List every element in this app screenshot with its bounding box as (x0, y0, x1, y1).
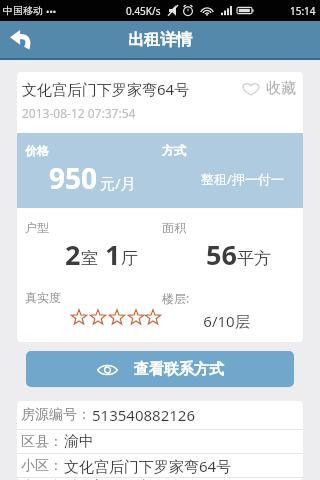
staticText: 楼层: (162, 290, 190, 306)
staticText: 价格 (25, 143, 49, 158)
staticText: 渝中 (64, 432, 94, 451)
staticText: 平方 (237, 248, 271, 269)
button[interactable]: 收藏 (238, 75, 299, 102)
staticText: 56 (206, 236, 237, 273)
staticText: 文化宫后门下罗家弯64号 (64, 456, 232, 476)
staticText: 房源编号： (21, 406, 91, 424)
staticText: 区县： (21, 433, 63, 451)
staticText: ••• (46, 5, 57, 17)
staticText: 文化宫后门下罗家弯64号 (22, 79, 190, 99)
staticText: 小区： (21, 457, 63, 475)
staticText: 房屋类型： (21, 478, 91, 480)
staticText: 方式 (162, 143, 186, 158)
staticText: 面积 (162, 220, 186, 235)
staticText: 出租详情 (128, 30, 192, 50)
staticText: 厅 (121, 248, 138, 269)
staticText: 室 (81, 248, 98, 269)
staticText: 元/月 (100, 173, 136, 193)
staticText: 户型 (25, 220, 49, 235)
button[interactable]: Back (6, 25, 36, 55)
staticText: 6/10层 (162, 311, 291, 331)
staticText: 15:14 (290, 4, 316, 18)
staticText: 整租/押一付一 (182, 170, 303, 188)
staticText: 查看联系方式 (134, 360, 224, 379)
staticText: 普通住宅 (92, 478, 152, 480)
staticText: 2013-08-12 07:37:54 (22, 105, 136, 121)
button[interactable]: 查看联系方式 (26, 351, 294, 387)
staticText: 950 (49, 159, 98, 197)
staticText: 收藏 (266, 79, 296, 98)
staticText: 中国移动 (3, 4, 43, 17)
staticText: 1 (105, 236, 121, 273)
staticText: 2 (65, 236, 81, 273)
staticText: 真实度 (25, 290, 61, 305)
staticText: 513540882126 (92, 405, 195, 425)
staticText: 0.45K/s (126, 4, 161, 18)
